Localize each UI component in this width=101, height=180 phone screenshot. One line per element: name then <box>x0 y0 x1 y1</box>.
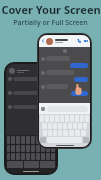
button[interactable]: Message input <box>39 103 90 114</box>
staticText: Cover Your Screen <box>1 2 101 17</box>
button[interactable]: Chat screen preview <box>37 33 92 149</box>
button[interactable]: Dimmed screen preview <box>4 62 58 175</box>
button[interactable]: Conversation header <box>39 35 90 47</box>
other: Call <box>77 39 81 43</box>
staticText: Partially or Full Screen <box>13 18 88 28</box>
other: Video call <box>84 39 88 43</box>
